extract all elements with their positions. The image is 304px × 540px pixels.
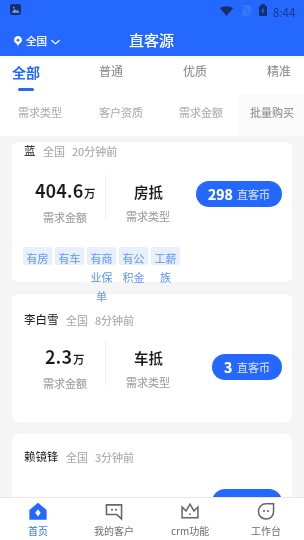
button[interactable]: 3 bbox=[212, 354, 282, 380]
staticText: 普通 bbox=[99, 62, 124, 79]
staticText: 赖镜锋 bbox=[24, 448, 59, 465]
staticText: 8 bbox=[224, 492, 233, 512]
staticText: 全国 bbox=[26, 33, 47, 48]
button[interactable]: 优质 bbox=[157, 56, 233, 92]
staticText: 直客币 bbox=[237, 186, 270, 202]
button[interactable]: 全部 bbox=[0, 56, 64, 92]
staticText: 全部 bbox=[12, 62, 40, 82]
staticText: 需求金额 bbox=[179, 104, 223, 120]
button[interactable]: 全国 bbox=[12, 29, 62, 52]
button[interactable]: crm功能 bbox=[152, 497, 228, 540]
button[interactable]: 我的客户 bbox=[76, 497, 152, 540]
button[interactable]: 工作台 bbox=[228, 497, 304, 540]
button[interactable]: 8 bbox=[212, 489, 282, 515]
button[interactable]: 赖镜锋 bbox=[12, 434, 292, 540]
staticText: 404.6 bbox=[35, 177, 84, 203]
staticText: 精准 bbox=[267, 62, 292, 79]
staticText: 8:44 bbox=[273, 4, 296, 21]
staticText: 需求类型 bbox=[126, 208, 170, 224]
staticText: 工薪族 bbox=[151, 250, 180, 285]
staticText: 我的客户 bbox=[94, 523, 134, 537]
staticText: 需求金额 bbox=[43, 375, 87, 391]
staticText: 李白雪 bbox=[24, 311, 59, 328]
staticText: 万 bbox=[84, 185, 96, 202]
staticText: 直客源 bbox=[129, 29, 175, 51]
staticText: 客户资质 bbox=[99, 104, 143, 120]
staticText: 房抵 bbox=[134, 181, 163, 202]
staticText: 有公积金 bbox=[119, 250, 148, 285]
staticText: crm功能 bbox=[171, 523, 210, 537]
staticText: 8分钟前 bbox=[95, 312, 135, 328]
staticText: 直客币 bbox=[237, 359, 270, 375]
button[interactable]: 蓝 bbox=[12, 142, 292, 282]
staticText: 20分钟前 bbox=[72, 143, 118, 159]
staticText: 需求类型 bbox=[18, 104, 62, 120]
staticText: 3分钟前 bbox=[95, 449, 135, 465]
staticText: 万 bbox=[73, 351, 85, 368]
button[interactable]: 需求金额 bbox=[163, 92, 239, 136]
staticText: 全国 bbox=[43, 143, 65, 159]
staticText: 有车 bbox=[55, 250, 84, 266]
button[interactable]: 需求类型 bbox=[2, 92, 78, 136]
staticText: 需求金额 bbox=[43, 209, 87, 225]
button[interactable]: 298 bbox=[196, 181, 282, 207]
staticText: 有商业保单 bbox=[87, 250, 116, 304]
button[interactable]: 首页 bbox=[0, 497, 76, 540]
staticText: 优质 bbox=[183, 62, 208, 79]
staticText: 批量购买 bbox=[250, 104, 294, 120]
button[interactable]: 李白雪 bbox=[12, 294, 292, 422]
staticText: 3 bbox=[224, 357, 233, 377]
staticText: 首页 bbox=[28, 523, 48, 537]
button[interactable]: 普通 bbox=[73, 56, 149, 92]
staticText: 全国 bbox=[66, 449, 88, 465]
staticText: 有房 bbox=[23, 250, 52, 266]
button[interactable]: 精准 bbox=[241, 56, 304, 92]
staticText: 蓝 bbox=[24, 142, 36, 159]
staticText: 工作台 bbox=[251, 523, 281, 537]
button[interactable]: 客户资质 bbox=[83, 92, 159, 136]
staticText: 2.3 bbox=[45, 343, 73, 369]
staticText: 298 bbox=[208, 184, 233, 204]
staticText: 全国 bbox=[66, 312, 88, 328]
button[interactable]: 批量购买 bbox=[239, 95, 304, 136]
staticText: 需求类型 bbox=[126, 374, 170, 390]
staticText: 直客币 bbox=[237, 494, 270, 510]
staticText: 车抵 bbox=[134, 347, 163, 368]
